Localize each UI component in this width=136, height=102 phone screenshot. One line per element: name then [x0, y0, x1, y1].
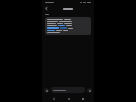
- button[interactable]: Add attachment: [44, 88, 49, 93]
- button[interactable]: Back: [51, 96, 56, 101]
- button[interactable]: Recent apps: [80, 96, 85, 101]
- button[interactable]: Open link: [47, 27, 59, 29]
- button[interactable]: Back: [44, 6, 49, 11]
- button[interactable]: [51, 87, 85, 93]
- button[interactable]: Home: [66, 96, 71, 101]
- button[interactable]: Open link: [45, 17, 91, 35]
- button[interactable]: [60, 27, 67, 29]
- button[interactable]: Send: [87, 88, 92, 93]
- button[interactable]: Open link: [58, 25, 65, 26]
